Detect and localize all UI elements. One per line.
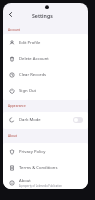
button[interactable]: Clear Records <box>3 66 88 82</box>
staticText: Appearance <box>8 104 26 108</box>
staticText: Terms & Conditions <box>19 165 58 171</box>
staticText: Sign Out <box>19 88 37 94</box>
staticText: About <box>19 178 31 184</box>
staticText: About <box>8 134 17 138</box>
button[interactable]: Delete Account <box>3 50 88 66</box>
button[interactable]: About <box>3 175 88 189</box>
button[interactable]: Terms & Conditions <box>3 159 88 175</box>
staticText: Delete Account <box>19 56 49 62</box>
button[interactable]: Sign Out <box>3 82 88 98</box>
staticText: Settings <box>32 12 53 19</box>
staticText: Account <box>8 28 21 32</box>
button[interactable] <box>73 117 83 123</box>
staticText: Privacy Policy <box>19 149 46 155</box>
button[interactable]: Back <box>4 8 17 21</box>
staticText: A property of Lokmedia Publication <box>19 184 62 188</box>
staticText: Clear Records <box>19 72 46 78</box>
button[interactable]: Privacy Policy <box>3 143 88 159</box>
staticText: Dark Mode <box>19 117 41 123</box>
staticText: Edit Profile <box>19 40 41 46</box>
button[interactable]: Dark Mode <box>3 112 88 125</box>
button[interactable]: Edit Profile <box>3 34 88 50</box>
